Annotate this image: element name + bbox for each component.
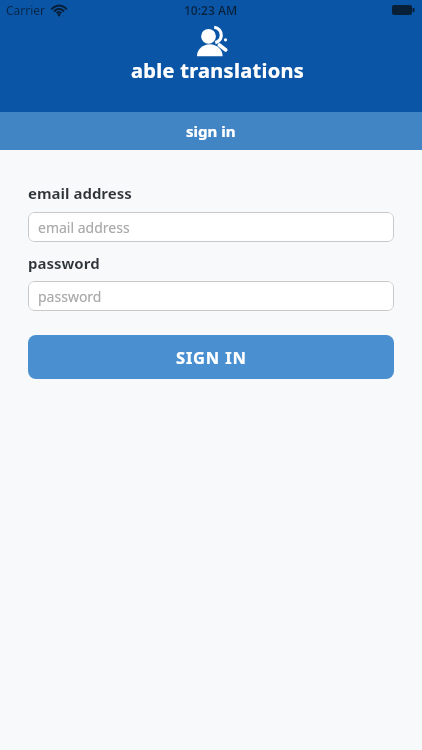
staticText: Carrier xyxy=(6,2,46,18)
staticText: 10:23 AM xyxy=(184,2,238,18)
staticText: password xyxy=(28,253,100,273)
staticText: email address xyxy=(38,218,130,237)
staticText: SIGN IN xyxy=(176,346,247,368)
button[interactable]: password xyxy=(28,281,394,311)
staticText: email address xyxy=(28,183,132,203)
staticText: able translations xyxy=(131,57,305,84)
staticText: password xyxy=(38,287,102,306)
button[interactable]: sign in xyxy=(0,112,422,150)
button[interactable]: email address xyxy=(28,212,394,242)
staticText: sign in xyxy=(186,121,236,141)
button[interactable]: SIGN IN xyxy=(28,335,394,379)
